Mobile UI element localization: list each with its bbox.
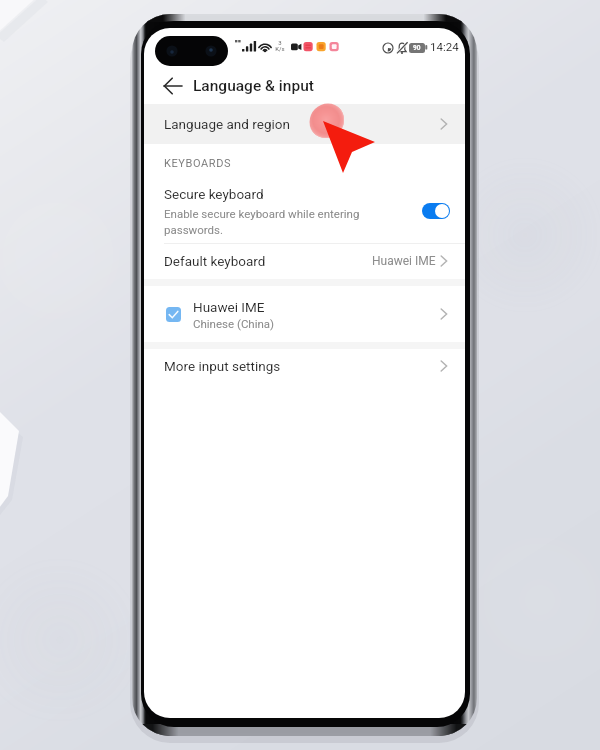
other: Open — [440, 255, 448, 267]
button[interactable]: Default keyboard — [144, 243, 465, 279]
staticText: Chinese (China) — [193, 317, 275, 330]
staticText: Secure keyboard — [164, 186, 264, 202]
button[interactable]: Language and region — [144, 104, 465, 144]
other: Open — [440, 308, 448, 320]
staticText: KEYBOARDS — [164, 157, 232, 170]
staticText: Default keyboard — [164, 253, 266, 269]
other: Open — [440, 360, 448, 372]
staticText: More input settings — [164, 358, 281, 374]
staticText: Huawei IME — [193, 299, 265, 315]
staticText: 90 — [413, 44, 421, 52]
other: Open — [440, 118, 448, 130]
button[interactable]: Secure keyboard — [144, 186, 465, 237]
button[interactable]: More input settings — [144, 349, 465, 383]
staticText: Language & input — [193, 77, 314, 95]
button[interactable]: Huawei IME — [144, 286, 465, 342]
staticText: Enable secure keyboard while entering pa… — [164, 207, 405, 237]
staticText: Language and region — [164, 116, 290, 132]
button[interactable]: Back — [157, 71, 187, 101]
staticText: Huawei IME — [372, 254, 436, 268]
button[interactable]: Secure keyboard toggle — [422, 203, 450, 219]
staticText: 14:24 — [430, 40, 459, 53]
staticText: 3 K/s — [275, 39, 285, 53]
